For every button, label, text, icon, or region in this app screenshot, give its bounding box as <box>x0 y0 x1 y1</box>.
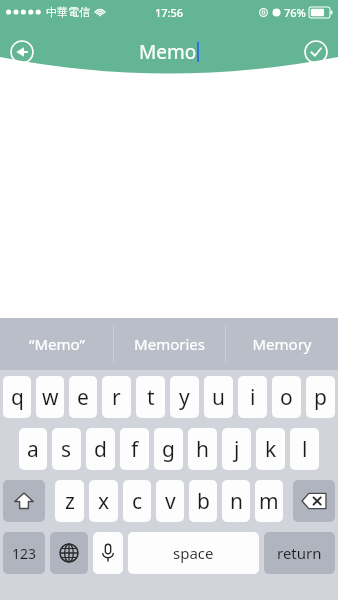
button[interactable]: Back <box>0 30 44 74</box>
staticText: r <box>112 383 121 412</box>
button[interactable]: 123 <box>3 532 45 574</box>
staticText: u <box>212 383 225 412</box>
button[interactable]: i <box>238 376 267 418</box>
staticText: d <box>94 435 107 464</box>
staticText: f <box>131 435 139 464</box>
button[interactable]: Change keyboard <box>50 532 88 574</box>
button[interactable]: f <box>120 428 149 470</box>
staticText: v <box>165 487 176 516</box>
staticText: o <box>280 383 293 412</box>
staticText: x <box>98 487 110 516</box>
button[interactable]: u <box>204 376 233 418</box>
button[interactable]: k <box>256 428 285 470</box>
staticText: 中華電信 <box>46 5 90 19</box>
button[interactable]: d <box>86 428 115 470</box>
staticText: l <box>302 435 308 464</box>
staticText: Memo <box>139 39 197 65</box>
button[interactable]: y <box>170 376 199 418</box>
staticText: 76% <box>284 5 306 20</box>
button[interactable]: s <box>52 428 81 470</box>
button[interactable]: h <box>188 428 217 470</box>
button[interactable]: l <box>290 428 319 470</box>
button[interactable]: return <box>264 532 335 574</box>
button[interactable]: Dictation <box>93 532 123 574</box>
staticText: c <box>132 487 143 516</box>
staticText: Memories <box>134 334 205 354</box>
staticText: s <box>61 435 72 464</box>
button[interactable]: Memory <box>226 318 338 370</box>
button[interactable]: o <box>272 376 301 418</box>
button[interactable]: e <box>69 376 97 418</box>
button[interactable]: “Memo” <box>0 318 113 370</box>
button[interactable]: m <box>255 480 283 522</box>
staticText: space <box>173 543 214 563</box>
button[interactable]: Shift <box>3 480 45 522</box>
staticText: m <box>259 487 279 516</box>
staticText: h <box>196 435 209 464</box>
button[interactable]: b <box>189 480 217 522</box>
button[interactable]: Memories <box>114 318 225 370</box>
button[interactable]: x <box>89 480 118 522</box>
button[interactable]: p <box>306 376 335 418</box>
button[interactable]: q <box>3 376 31 418</box>
button[interactable]: v <box>156 480 184 522</box>
staticText: 123 <box>12 544 37 563</box>
staticText: 17:56 <box>155 5 184 20</box>
staticText: “Memo” <box>29 334 85 354</box>
button[interactable]: c <box>123 480 151 522</box>
button[interactable]: n <box>222 480 250 522</box>
button[interactable]: r <box>102 376 131 418</box>
button[interactable]: t <box>136 376 165 418</box>
staticText: w <box>42 383 59 412</box>
staticText: i <box>250 383 256 412</box>
button[interactable]: Backspace <box>293 480 335 522</box>
staticText: j <box>234 435 240 464</box>
staticText: t <box>147 383 155 412</box>
staticText: y <box>179 383 190 412</box>
button[interactable]: g <box>154 428 183 470</box>
staticText: q <box>11 383 24 412</box>
staticText: k <box>265 435 277 464</box>
button[interactable]: z <box>55 480 84 522</box>
staticText: z <box>65 487 75 516</box>
button[interactable]: a <box>19 428 47 470</box>
button[interactable]: j <box>222 428 251 470</box>
staticText: e <box>77 383 89 412</box>
staticText: return <box>277 543 322 563</box>
staticText: n <box>230 487 243 516</box>
staticText: b <box>197 487 210 516</box>
staticText: a <box>27 435 39 464</box>
button[interactable]: Confirm <box>294 30 338 74</box>
button[interactable]: w <box>36 376 64 418</box>
button[interactable]: space <box>128 532 259 574</box>
staticText: Memory <box>252 334 312 354</box>
staticText: g <box>162 435 175 464</box>
staticText: p <box>314 383 327 412</box>
